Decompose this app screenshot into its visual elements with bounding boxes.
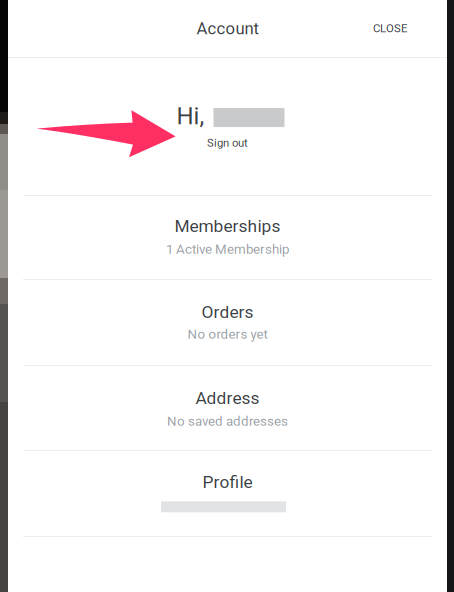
button[interactable]: Orders [8,280,447,365]
staticText: 1 Active Membership [166,241,289,257]
button[interactable]: Profile [8,451,447,536]
button[interactable]: Memberships [8,196,447,279]
staticText: Orders [201,302,253,322]
staticText: Sign out [207,136,248,149]
staticText: Address [195,388,259,408]
staticText: Memberships [174,216,280,236]
staticText: Profile [202,472,252,492]
staticText: No orders yet [187,326,267,342]
staticText: CLOSE [373,22,407,35]
staticText: Account [196,19,258,38]
staticText: No saved addresses [167,413,288,429]
button[interactable]: CLOSE [359,12,421,45]
staticText: Hi, [176,102,204,130]
button[interactable]: Address [8,366,447,450]
button[interactable]: Sign out [197,132,258,153]
